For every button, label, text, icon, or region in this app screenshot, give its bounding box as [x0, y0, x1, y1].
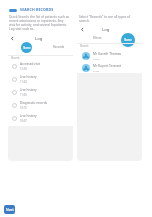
staticText: Log — [102, 27, 110, 33]
button[interactable]: Records — [53, 45, 65, 49]
staticText: 11:20 — [93, 69, 100, 72]
staticText: Diagnostic records — [20, 101, 48, 105]
staticText: 10:15 — [20, 106, 27, 110]
staticText: Live history — [20, 114, 37, 118]
staticText: Log — [35, 36, 43, 42]
button[interactable]: Diagnostic records — [12, 99, 73, 112]
staticText: Live history — [20, 88, 37, 92]
staticText: Name — [23, 46, 31, 50]
staticText: Name — [124, 38, 132, 42]
button[interactable]: Live history — [12, 86, 73, 99]
staticText: Select "Records" to see all types of sea… — [79, 15, 140, 23]
button[interactable]: Mr Gareth Thomas — [82, 50, 142, 62]
button[interactable]: Back — [9, 35, 16, 42]
button[interactable]: Next — [4, 205, 15, 214]
staticText: 13:30 — [93, 57, 100, 60]
staticText: Recent — [80, 44, 89, 48]
button[interactable]: Mr Rupert Tennant — [82, 62, 142, 74]
button[interactable]: Accessed visit — [12, 60, 73, 73]
staticText: Mr Gareth Thomas — [93, 52, 122, 56]
staticText: 10:07 — [20, 119, 27, 123]
staticText: 13:30 — [20, 67, 27, 71]
staticText: Quick Search: the list of patients such … — [9, 15, 70, 31]
staticText: Filters — [93, 36, 102, 40]
button[interactable]: Live history — [12, 112, 73, 125]
button[interactable]: Back — [79, 26, 86, 33]
staticText: Accessed visit — [20, 62, 40, 66]
button[interactable]: Profile — [21, 42, 32, 53]
staticText: 11:20 — [20, 80, 27, 84]
button[interactable]: Live history — [12, 73, 73, 86]
staticText: SEARCH RECORDS — [20, 7, 54, 12]
staticText: Recent — [11, 56, 20, 60]
staticText: Next — [6, 207, 14, 212]
staticText: Live history — [20, 75, 37, 79]
staticText: Mr Rupert Tennant — [93, 64, 122, 68]
staticText: 11:00 — [20, 93, 27, 97]
button[interactable]: Filters — [93, 36, 102, 40]
staticText: Records — [53, 45, 65, 49]
button[interactable]: Profile — [121, 33, 135, 47]
